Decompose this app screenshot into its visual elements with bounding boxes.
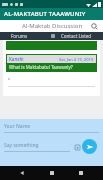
- staticText: Kanshi: [9, 56, 24, 62]
- staticText: Your Name: [4, 123, 31, 130]
- staticText: Al-Maktab Discussion: [22, 22, 83, 30]
- button[interactable]: AL-MAKTABUT TAAAWUNIY: [0, 8, 103, 20]
- button[interactable]: Al-Maktab Discussion: [0, 20, 103, 32]
- button[interactable]: Attach photo: [73, 143, 81, 151]
- staticText: Sat, Jan 4 15, 2019: [59, 57, 94, 62]
- button[interactable]: Forums: [0, 32, 51, 40]
- button[interactable]: Back: [14, 166, 30, 180]
- button[interactable]: Contact Listed: [51, 32, 103, 40]
- staticText: Forums: [11, 33, 28, 39]
- staticText: What is Maktabatul Taawuniy?: [9, 64, 73, 70]
- button[interactable]: Home: [44, 166, 60, 180]
- button[interactable]: Say something: [4, 142, 70, 152]
- button[interactable]: Your Name: [4, 123, 99, 133]
- staticText: Say something: [4, 142, 39, 149]
- staticText: AL-MAKTABUT TAAAWUNIY: [4, 10, 86, 18]
- button[interactable]: Recent apps: [73, 166, 89, 180]
- button[interactable]: Send: [82, 139, 97, 154]
- button[interactable]: Kanshi: [7, 55, 96, 71]
- button[interactable]: Search: [90, 22, 99, 31]
- staticText: Contact Listed: [61, 33, 92, 39]
